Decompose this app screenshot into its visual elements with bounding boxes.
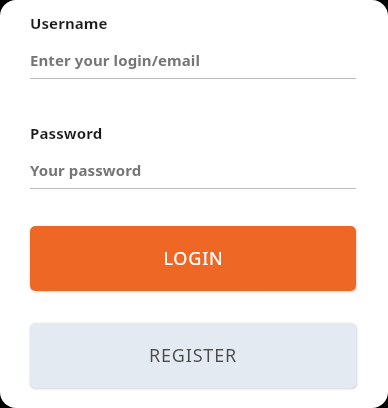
button[interactable]: Enter your login/email [30, 50, 356, 70]
staticText: REGISTER [149, 343, 237, 368]
button[interactable]: REGISTER [30, 323, 356, 388]
staticText: LOGIN [163, 246, 224, 271]
staticText: Username [30, 13, 108, 33]
staticText: Your password [30, 160, 142, 180]
staticText: Enter your login/email [30, 50, 201, 70]
button[interactable]: LOGIN [30, 226, 356, 291]
staticText: Password [30, 123, 103, 143]
button[interactable]: Your password [30, 160, 356, 180]
